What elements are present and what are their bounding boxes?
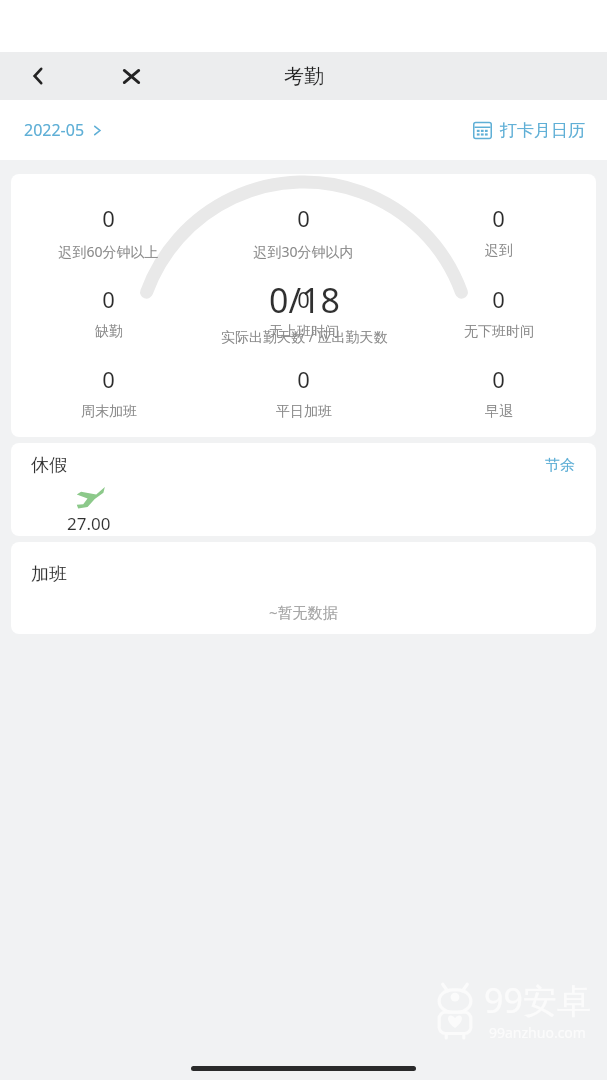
button[interactable]: 0 <box>401 201 596 262</box>
staticText: 迟到 <box>485 242 513 260</box>
staticText: 99安卓 <box>484 977 591 1023</box>
button[interactable]: 27.00 <box>59 484 119 536</box>
staticText: 0 <box>297 364 310 394</box>
button[interactable]: 0 <box>11 282 206 343</box>
button[interactable]: 节余 <box>542 453 578 478</box>
button[interactable]: 2022-05 <box>20 115 107 145</box>
staticText: 0 <box>102 284 115 314</box>
button[interactable]: 0 <box>206 362 401 423</box>
staticText: 打卡月日历 <box>500 120 585 141</box>
staticText: 0 <box>492 203 505 233</box>
staticText: 缺勤 <box>95 323 123 341</box>
button[interactable]: Back <box>18 56 58 96</box>
staticText: 0 <box>297 203 310 233</box>
staticText: 0 <box>102 203 115 233</box>
staticText: 迟到60分钟以上 <box>58 242 159 261</box>
button[interactable]: 0 <box>206 201 401 263</box>
staticText: 0 <box>297 284 310 314</box>
staticText: 0/18 <box>269 277 340 323</box>
staticText: 0 <box>492 364 505 394</box>
staticText: 休假 <box>31 454 67 477</box>
button[interactable]: 打卡月日历 <box>469 116 589 145</box>
button[interactable]: 0 <box>11 362 206 423</box>
staticText: 27.00 <box>67 512 111 535</box>
staticText: ~暂无数据 <box>269 602 338 622</box>
staticText: 99anzhuo.com <box>489 1023 586 1042</box>
staticText: 实际出勤天数 / 应出勤天数 <box>221 327 388 346</box>
staticText: 迟到30分钟以内 <box>253 242 354 261</box>
button[interactable]: 0 <box>206 282 401 343</box>
staticText: 周末加班 <box>81 403 137 421</box>
button[interactable]: 0 <box>11 201 206 263</box>
button[interactable]: 0 <box>401 282 596 343</box>
staticText: 平日加班 <box>276 403 332 421</box>
staticText: 无下班时间 <box>464 323 534 341</box>
staticText: 0 <box>102 364 115 394</box>
staticText: 考勤 <box>284 64 324 89</box>
staticText: 0 <box>492 284 505 314</box>
staticText: 2022-05 <box>24 119 85 141</box>
button[interactable]: Close <box>111 56 151 96</box>
staticText: 加班 <box>31 563 67 586</box>
staticText: 无上班时间 <box>269 323 339 341</box>
staticText: 早退 <box>485 403 513 421</box>
button[interactable]: 0 <box>401 362 596 423</box>
staticText: 节余 <box>545 456 575 475</box>
